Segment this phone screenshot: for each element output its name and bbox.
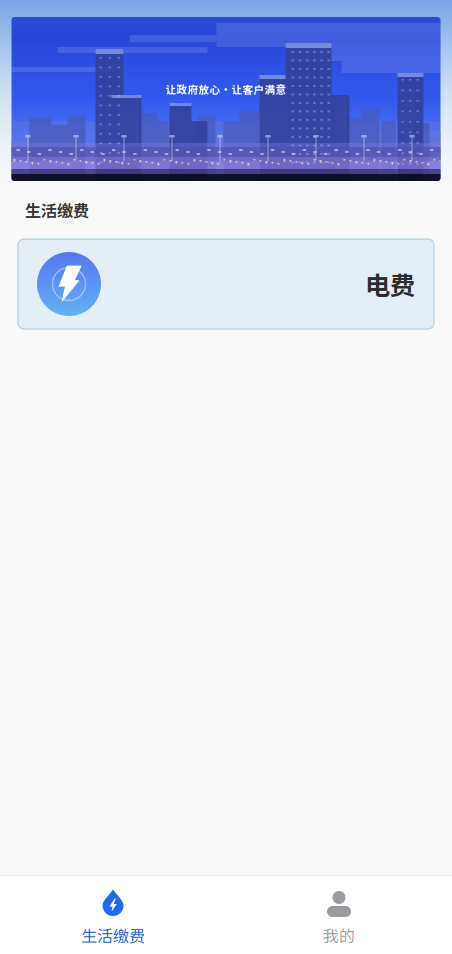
button[interactable]: 我的 [226, 876, 452, 954]
staticText: 我的 [323, 923, 355, 947]
staticText: 生活缴费 [81, 923, 145, 947]
button[interactable]: 生活缴费 [0, 876, 226, 954]
staticText: 电费 [365, 266, 415, 302]
staticText: 让政府放心·让客户满意 [165, 81, 286, 97]
button[interactable]: 电费 [18, 239, 434, 329]
staticText: 生活缴费 [25, 198, 89, 222]
